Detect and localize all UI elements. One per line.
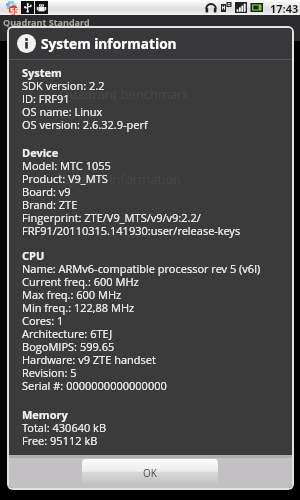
- staticText: System SDK version: 2.2 ID: FRF91 OS nam…: [22, 67, 148, 132]
- staticText: 17:43: [270, 1, 299, 16]
- staticText: CPU Name: ARMv6-compatible processor rev…: [22, 250, 261, 393]
- button[interactable]: OK: [82, 459, 218, 486]
- staticText: Device Model: MTC 1055 Product: V9_MTS B…: [22, 147, 241, 238]
- staticText: OK: [143, 466, 157, 480]
- staticText: System information: [41, 34, 177, 53]
- staticText: Memory Total: 430640 kB Free: 95112 kB: [22, 409, 107, 448]
- staticText: System information: [62, 170, 182, 188]
- staticText: Quadrant Standard: [3, 16, 90, 28]
- staticText: Quadrant benchmark: [59, 85, 190, 103]
- staticText: 55: [10, 5, 20, 16]
